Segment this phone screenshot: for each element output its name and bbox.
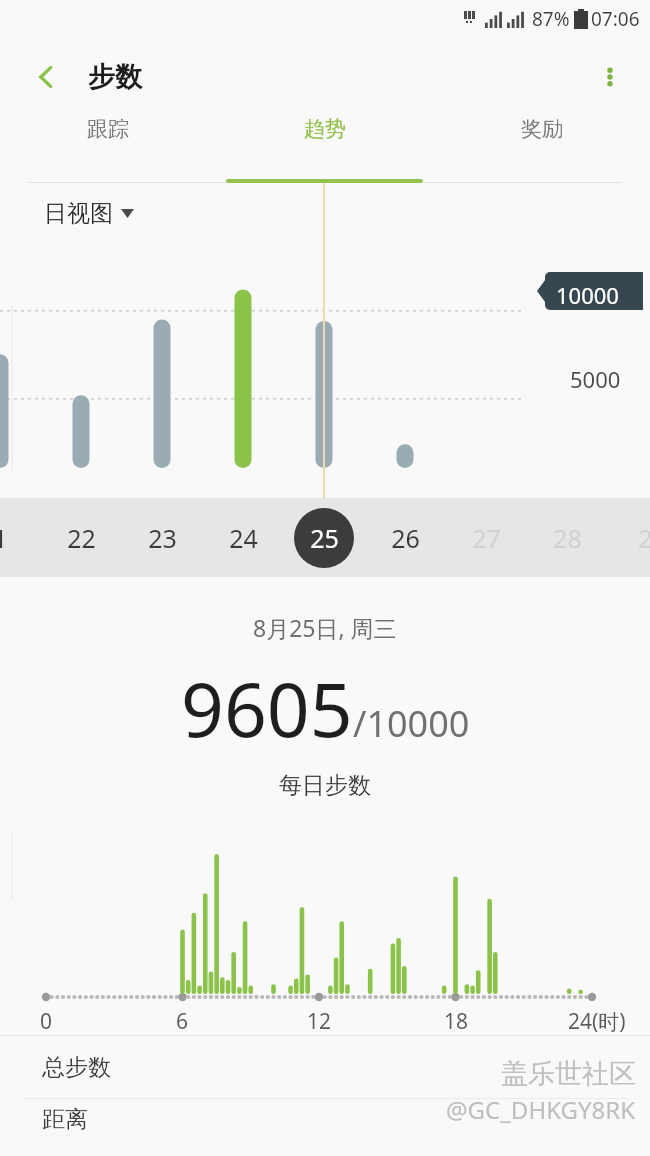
staticText: 27: [472, 521, 501, 555]
staticText: 6: [162, 1007, 202, 1036]
button[interactable]: 23: [132, 508, 192, 568]
staticText: 5000: [570, 364, 621, 394]
staticText: 总步数: [42, 1053, 111, 1082]
staticText: 9605: [181, 657, 353, 759]
staticText: 25: [310, 521, 339, 555]
staticText: 盖乐世社区: [501, 1057, 636, 1091]
staticText: 87%: [532, 6, 570, 32]
button[interactable]: 距离: [0, 1099, 650, 1139]
button[interactable]: 2: [615, 508, 650, 568]
staticText: 12: [299, 1007, 339, 1036]
button[interactable]: 27: [456, 508, 516, 568]
button[interactable]: 总步数: [0, 1036, 650, 1098]
staticText: 8月25日, 周三: [253, 612, 397, 643]
staticText: 24: [229, 521, 258, 555]
staticText: @GC_DHKGY8RK: [446, 1093, 636, 1126]
staticText: 日视图: [44, 199, 113, 228]
button[interactable]: 28: [537, 508, 597, 568]
button[interactable]: 25: [294, 508, 354, 568]
button[interactable]: 26: [375, 508, 435, 568]
staticText: 奖励: [521, 116, 563, 142]
staticText: 22: [67, 521, 96, 555]
staticText: 步数: [88, 60, 142, 94]
staticText: 24(时): [568, 1007, 626, 1036]
staticText: 28: [553, 521, 582, 555]
button[interactable]: More options: [584, 51, 636, 103]
button[interactable]: 奖励: [433, 116, 650, 142]
button[interactable]: Back: [20, 51, 72, 103]
staticText: 07:06: [591, 6, 640, 32]
button[interactable]: 1: [0, 508, 30, 568]
staticText: 1: [0, 521, 8, 555]
button[interactable]: 22: [51, 508, 111, 568]
staticText: 2: [638, 521, 650, 555]
button[interactable]: 24: [213, 508, 273, 568]
staticText: 跟踪: [87, 116, 129, 142]
staticText: /10000: [353, 699, 470, 748]
button[interactable]: 趋势: [216, 116, 433, 142]
staticText: 26: [391, 521, 420, 555]
staticText: 23: [148, 521, 177, 555]
staticText: 趋势: [304, 116, 346, 142]
staticText: 每日步数: [279, 771, 371, 800]
staticText: 0: [26, 1007, 66, 1036]
staticText: 10000: [556, 280, 619, 310]
staticText: 距离: [42, 1105, 88, 1134]
button[interactable]: 跟踪: [0, 116, 216, 142]
button[interactable]: 日视图: [44, 199, 134, 228]
staticText: 18: [436, 1007, 476, 1036]
